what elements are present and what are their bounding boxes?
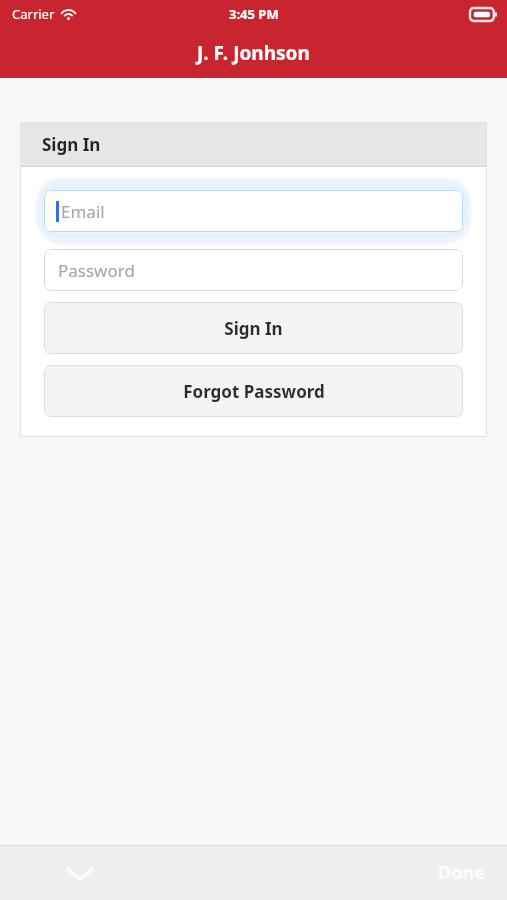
- button[interactable]: Hide keyboard: [58, 851, 102, 895]
- staticText: Sign In: [42, 133, 101, 156]
- button[interactable]: Done: [438, 860, 485, 885]
- button[interactable]: Forgot Password: [44, 365, 463, 417]
- staticText: Forgot Password: [183, 380, 325, 403]
- button[interactable]: Sign In: [44, 302, 463, 354]
- button[interactable]: Email: [42, 184, 465, 238]
- staticText: J. F. Jonhson: [197, 40, 310, 66]
- staticText: Sign In: [224, 317, 283, 340]
- staticText: Carrier: [12, 5, 55, 23]
- staticText: Email: [61, 200, 105, 223]
- button[interactable]: Password: [44, 249, 463, 291]
- staticText: 3:45 PM: [229, 5, 279, 23]
- staticText: Password: [58, 259, 135, 282]
- staticText: Done: [438, 860, 485, 885]
